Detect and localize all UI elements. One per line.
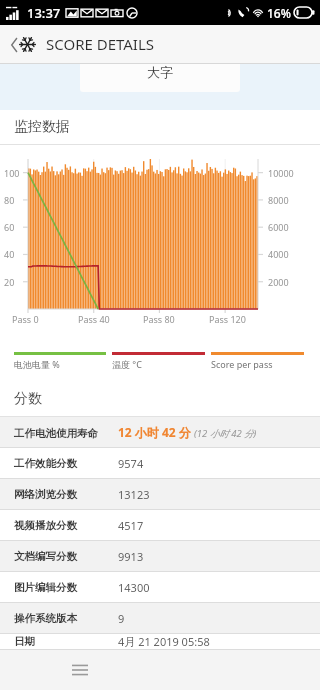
staticText: Pass 80 (143, 313, 175, 325)
staticText: SCORE DETAILS (46, 34, 155, 54)
staticText: Pass 40 (78, 313, 110, 325)
staticText: 13123 (118, 487, 150, 502)
staticText: 9574 (118, 456, 144, 471)
staticText: 9913 (118, 549, 144, 564)
staticText: Pass 0 (12, 313, 39, 325)
button[interactable]: 工作效能分数 (0, 448, 320, 478)
staticText: 工作效能分数 (14, 457, 77, 470)
staticText: 网络浏览分数 (14, 488, 77, 501)
staticText: 4517 (118, 518, 144, 533)
staticText: 2000 (268, 276, 289, 288)
staticText: 日期 (14, 635, 35, 648)
staticText: 80 (4, 194, 15, 206)
staticText: 12 小时 42 分 (118, 424, 191, 440)
staticText: 10000 (268, 167, 294, 179)
staticText: 4月 21 2019 05:58 (118, 634, 210, 649)
staticText: 6000 (268, 221, 289, 233)
staticText: 9 (118, 611, 125, 626)
button[interactable]: Menu (62, 652, 98, 688)
button[interactable]: 操作系统版本 (0, 603, 320, 633)
staticText: 操作系统版本 (14, 612, 77, 625)
button[interactable]: 日期 (0, 634, 320, 649)
staticText: 文档编写分数 (14, 550, 77, 563)
staticText: 4000 (268, 248, 289, 260)
staticText: 图片编辑分数 (14, 581, 77, 594)
staticText: 40 (4, 248, 15, 260)
staticText: 电池电量 % (14, 358, 60, 370)
button[interactable]: 视频播放分数 (0, 510, 320, 540)
staticText: 温度 °C (112, 358, 142, 370)
staticText: 60 (4, 221, 15, 233)
button[interactable]: 文档编写分数 (0, 541, 320, 571)
button[interactable]: Back (6, 27, 40, 61)
staticText: 16% (267, 5, 291, 21)
staticText: 监控数据 (14, 118, 70, 136)
staticText: 视频播放分数 (14, 519, 77, 532)
button[interactable]: 网络浏览分数 (0, 479, 320, 509)
staticText: 8000 (268, 194, 289, 206)
staticText: 分数 (14, 390, 42, 408)
staticText: 工作电池使用寿命 (14, 427, 98, 440)
staticText: (12 小时 42 分) (194, 427, 257, 440)
staticText: Score per pass (211, 358, 273, 370)
staticText: 14300 (118, 580, 150, 595)
staticText: 13:37 (27, 4, 61, 22)
staticText: Pass 120 (209, 313, 246, 325)
button[interactable]: 图片编辑分数 (0, 572, 320, 602)
staticText: 大字 (147, 64, 173, 80)
staticText: 20 (4, 276, 15, 288)
button[interactable]: 工作电池使用寿命 (0, 417, 320, 447)
staticText: 100 (4, 167, 20, 179)
